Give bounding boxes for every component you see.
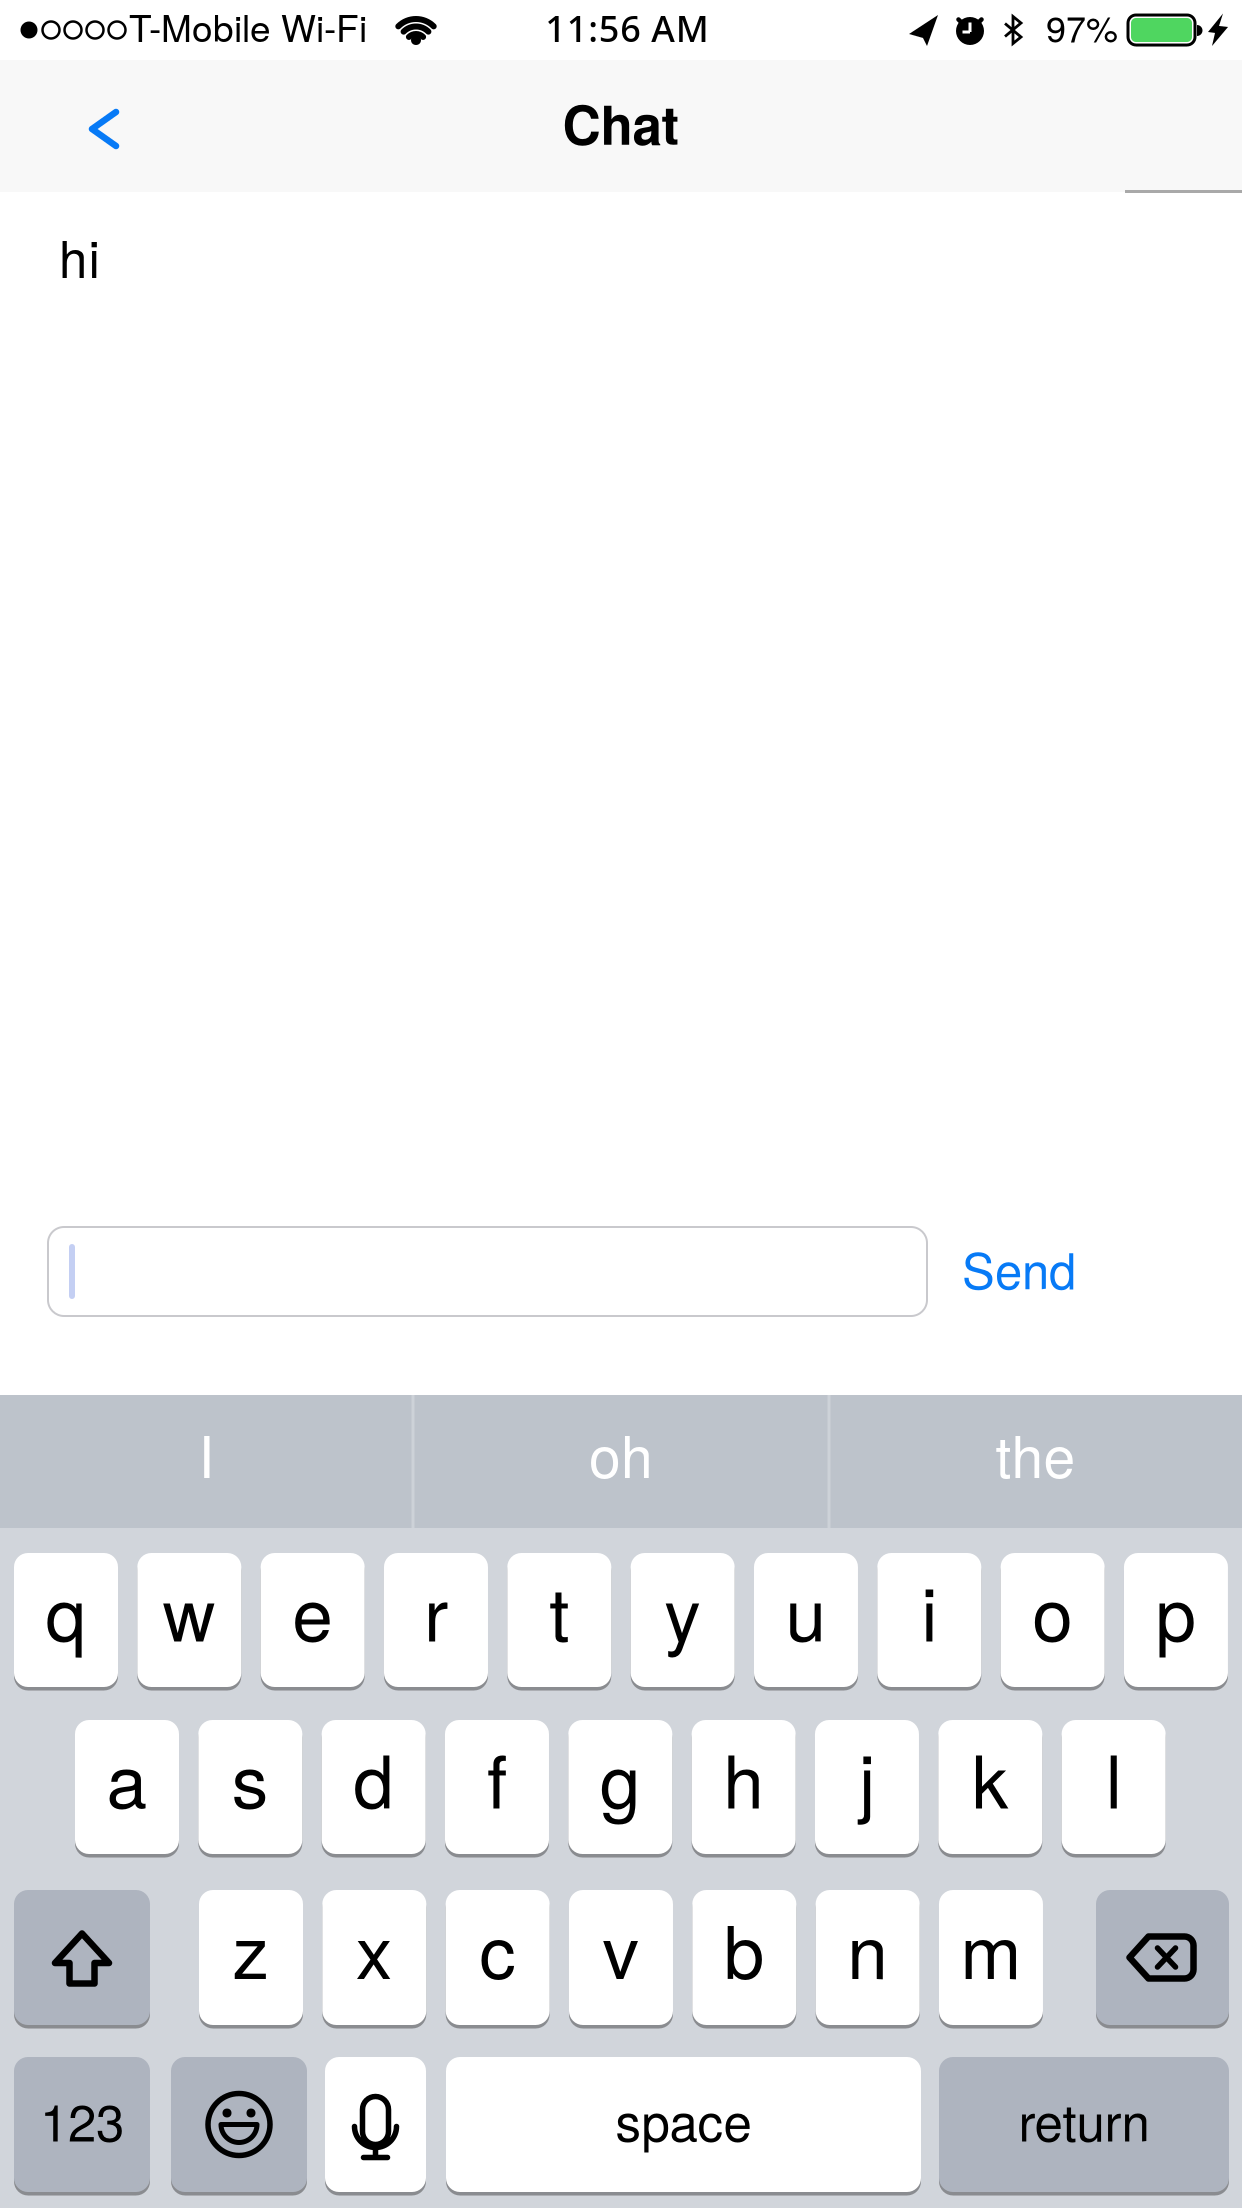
staticText: i xyxy=(921,1558,937,1662)
staticText: f xyxy=(487,1725,507,1829)
button[interactable]: Shift xyxy=(14,1890,150,2025)
staticText: Chat xyxy=(562,85,679,161)
staticText: space xyxy=(615,2083,751,2156)
button[interactable]: z xyxy=(199,1890,303,2025)
staticText: h xyxy=(723,1725,764,1829)
staticText: a xyxy=(106,1725,147,1829)
staticText: oh xyxy=(589,1413,653,1494)
button[interactable]: Delete xyxy=(1096,1890,1229,2025)
staticText: Send xyxy=(962,1233,1076,1303)
staticText: u xyxy=(785,1558,826,1662)
button[interactable]: j xyxy=(815,1720,919,1854)
button[interactable]: Back xyxy=(52,82,156,176)
button[interactable]: n xyxy=(816,1890,920,2025)
staticText: c xyxy=(479,1895,516,2000)
staticText: the xyxy=(995,1413,1075,1494)
button[interactable]: Emoji xyxy=(171,2057,307,2192)
staticText: r xyxy=(424,1558,448,1662)
button[interactable]: k xyxy=(938,1720,1042,1854)
staticText: o xyxy=(1032,1558,1073,1662)
button[interactable]: Send xyxy=(952,1223,1086,1313)
staticText: T-Mobile Wi-Fi xyxy=(129,0,367,52)
button[interactable]: f xyxy=(445,1720,549,1854)
button[interactable]: Dictate xyxy=(325,2057,426,2192)
staticText: s xyxy=(232,1725,269,1829)
button[interactable]: t xyxy=(507,1553,611,1687)
staticText: return xyxy=(1018,2083,1149,2156)
button[interactable]: v xyxy=(569,1890,673,2025)
staticText: j xyxy=(859,1725,875,1829)
staticText: y xyxy=(664,1558,701,1662)
button[interactable]: return xyxy=(939,2057,1229,2192)
button[interactable]: Message input xyxy=(48,1227,927,1316)
staticText: e xyxy=(292,1558,333,1662)
staticText: l xyxy=(1106,1725,1122,1829)
staticText: 11:56 AM xyxy=(545,3,709,52)
staticText: z xyxy=(232,1895,269,2000)
staticText: v xyxy=(602,1895,639,2000)
staticText: p xyxy=(1155,1558,1196,1662)
staticText: m xyxy=(960,1895,1021,2000)
staticText: I xyxy=(198,1413,214,1494)
button[interactable]: a xyxy=(75,1720,179,1854)
button[interactable]: space xyxy=(446,2057,921,2192)
button[interactable]: x xyxy=(322,1890,426,2025)
staticText: w xyxy=(163,1558,216,1662)
button[interactable]: g xyxy=(568,1720,672,1854)
button[interactable]: u xyxy=(754,1553,858,1687)
button[interactable]: the xyxy=(829,1395,1242,1528)
button[interactable]: c xyxy=(446,1890,550,2025)
button[interactable]: o xyxy=(1001,1553,1105,1687)
staticText: hi xyxy=(59,219,99,292)
button[interactable]: i xyxy=(877,1553,981,1687)
button[interactable]: m xyxy=(939,1890,1043,2025)
button[interactable]: q xyxy=(14,1553,118,1687)
button[interactable]: oh xyxy=(413,1395,829,1528)
staticText: t xyxy=(549,1558,569,1662)
staticText: d xyxy=(353,1725,394,1829)
button[interactable]: y xyxy=(631,1553,735,1687)
button[interactable]: h xyxy=(692,1720,796,1854)
staticText: g xyxy=(600,1725,641,1829)
button[interactable]: w xyxy=(137,1553,241,1687)
button[interactable]: I xyxy=(0,1395,413,1528)
staticText: k xyxy=(972,1725,1009,1829)
button[interactable]: p xyxy=(1124,1553,1228,1687)
button[interactable]: e xyxy=(261,1553,365,1687)
button[interactable]: b xyxy=(692,1890,796,2025)
staticText: 123 xyxy=(40,2083,124,2156)
button[interactable]: d xyxy=(322,1720,426,1854)
staticText: n xyxy=(847,1895,888,2000)
button[interactable]: l xyxy=(1062,1720,1166,1854)
staticText: q xyxy=(45,1558,86,1662)
staticText: x xyxy=(356,1895,393,2000)
staticText: 97% xyxy=(1046,1,1118,53)
button[interactable]: 123 xyxy=(14,2057,150,2192)
button[interactable]: r xyxy=(384,1553,488,1687)
button[interactable]: s xyxy=(198,1720,302,1854)
staticText: b xyxy=(724,1895,765,2000)
